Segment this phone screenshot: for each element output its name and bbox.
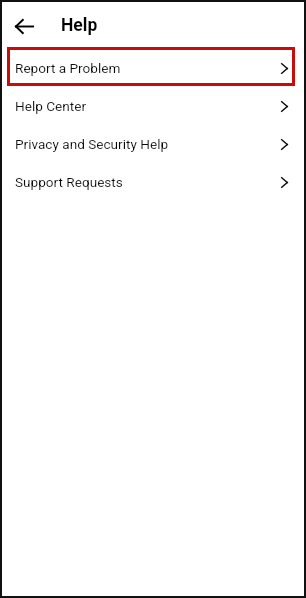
staticText: Support Requests [15,174,123,190]
staticText: Report a Problem [15,60,121,76]
button[interactable]: Back [15,14,41,38]
staticText: Help Center [15,98,87,114]
button[interactable]: Help Center [0,86,306,124]
staticText: Privacy and Security Help [15,136,169,152]
staticText: Help [61,15,98,36]
button[interactable]: Report a Problem [0,48,306,86]
button[interactable]: Support Requests [0,162,306,200]
button[interactable]: Privacy and Security Help [0,124,306,162]
